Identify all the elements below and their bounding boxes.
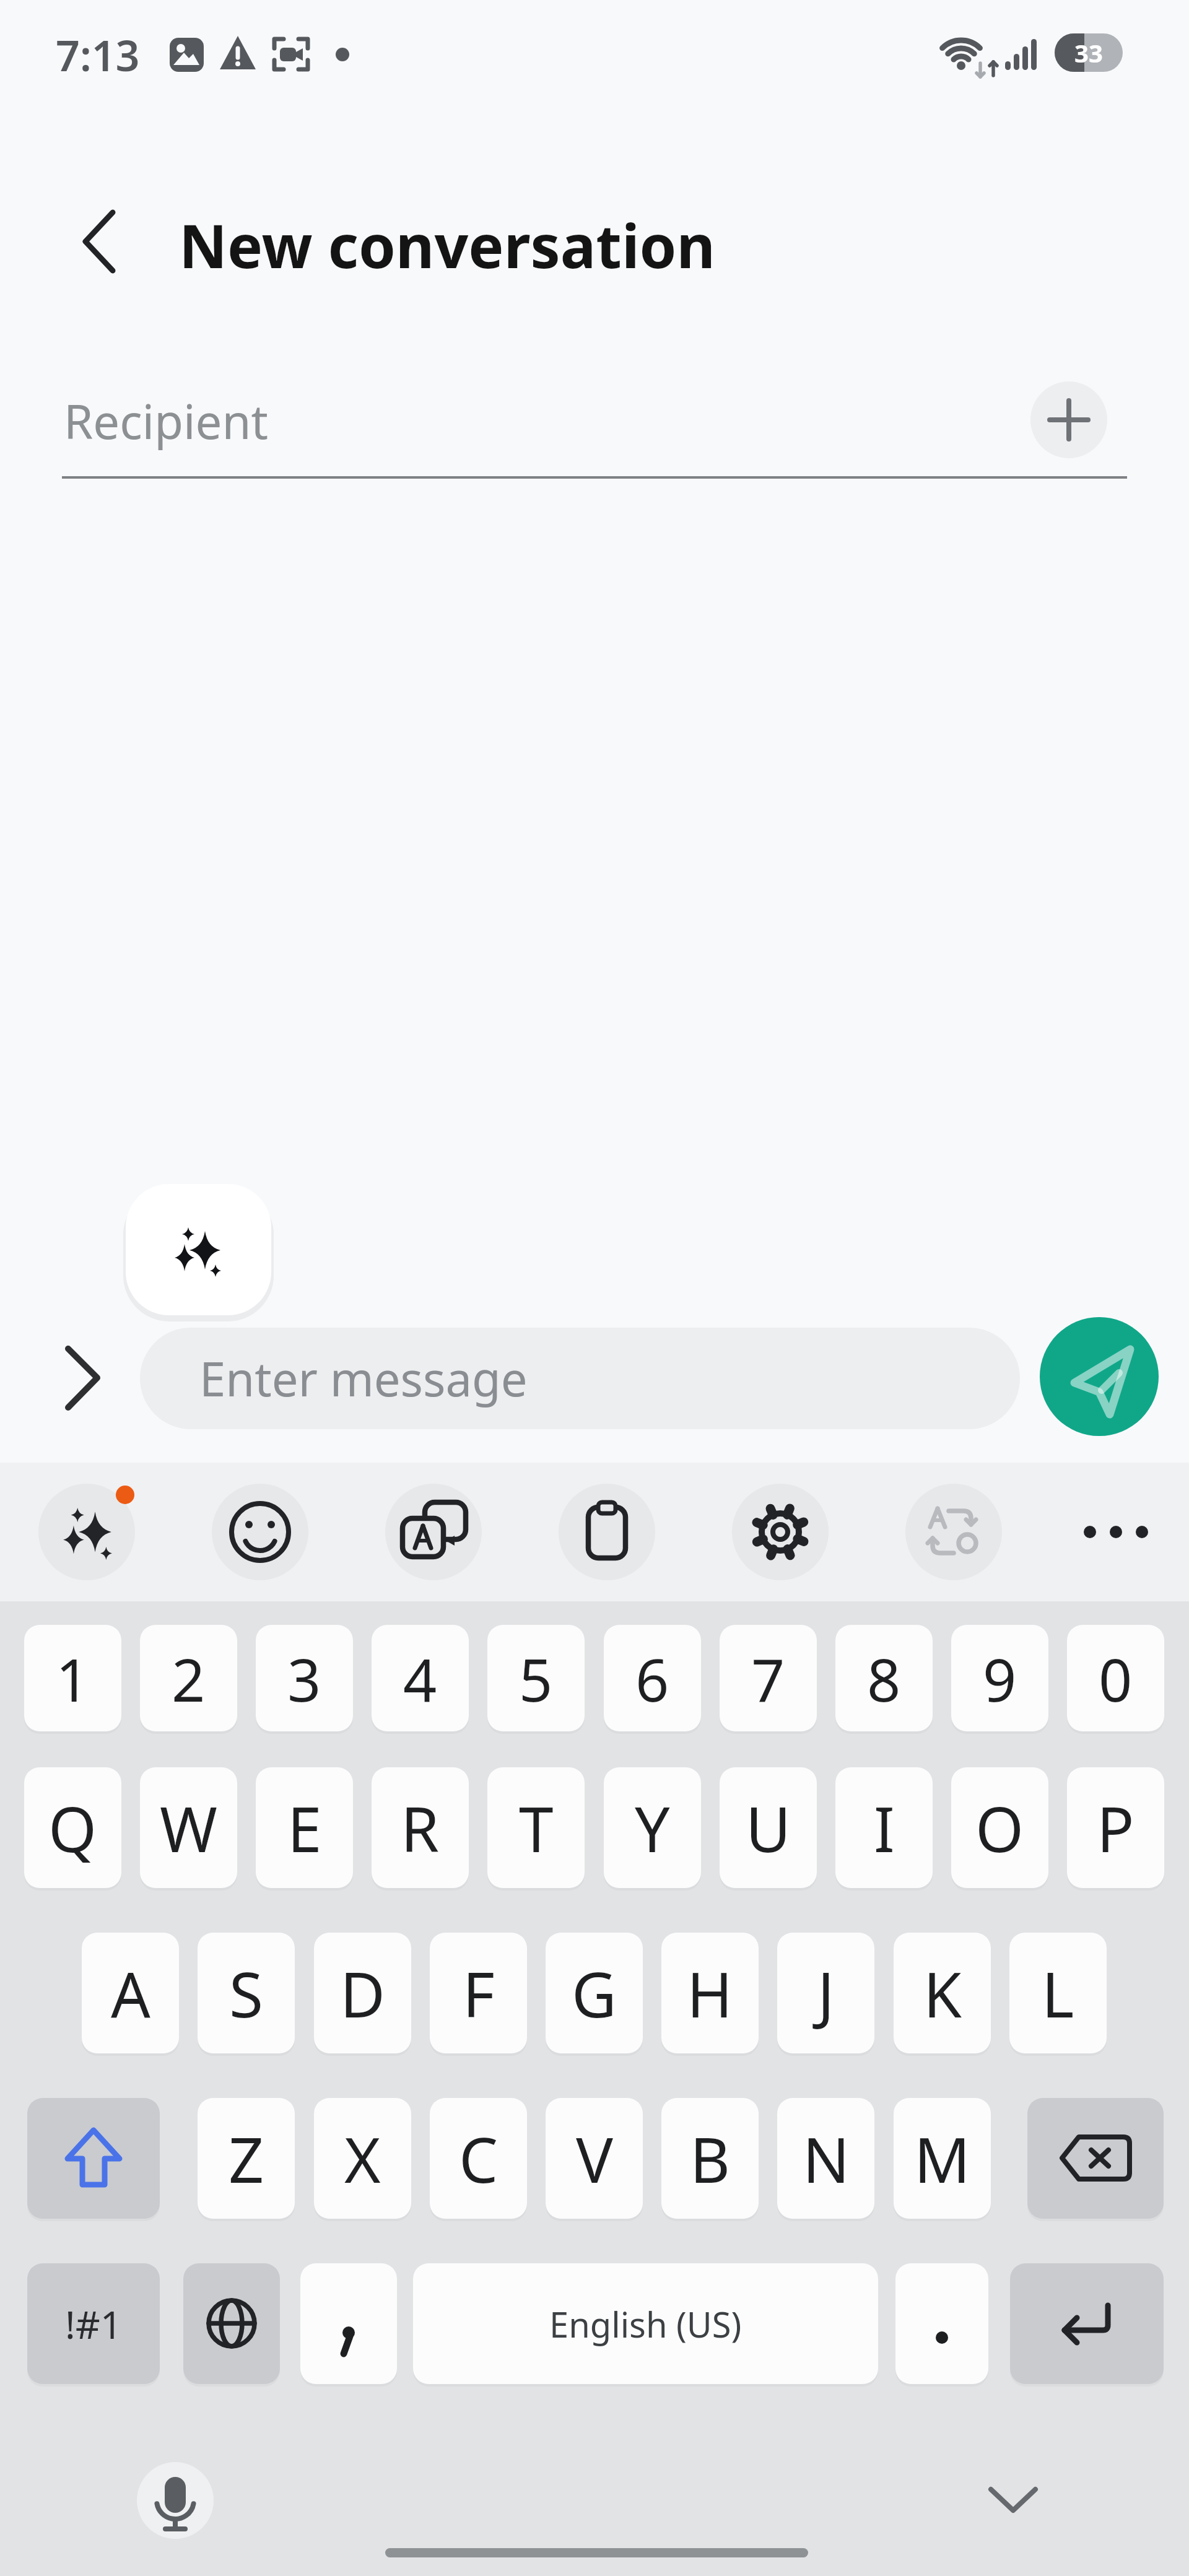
button[interactable]: English (US) — [413, 2263, 878, 2384]
staticText: M — [914, 2117, 970, 2201]
button[interactable]: H — [661, 1933, 759, 2053]
button[interactable]: W — [140, 1767, 237, 1888]
staticText: B — [690, 2117, 730, 2201]
button[interactable]: 1 — [24, 1625, 121, 1731]
button[interactable]: 4 — [372, 1625, 469, 1731]
staticText: 6 — [635, 1638, 669, 1718]
staticText: K — [923, 1951, 962, 2035]
button[interactable]: P — [1067, 1767, 1164, 1888]
button[interactable]: 9 — [951, 1625, 1048, 1731]
staticText: Q — [48, 1786, 97, 1870]
button[interactable] — [385, 1484, 482, 1580]
staticText: R — [401, 1786, 440, 1870]
button[interactable] — [68, 204, 136, 279]
button[interactable]: !#1 — [27, 2263, 160, 2384]
staticText: 8 — [867, 1638, 901, 1718]
staticText: 33 — [1074, 36, 1103, 69]
button[interactable]: 6 — [604, 1625, 701, 1731]
staticText: 0 — [1099, 1638, 1133, 1718]
staticText: Recipient — [64, 389, 268, 453]
button[interactable] — [732, 1484, 829, 1580]
button[interactable] — [905, 1484, 1002, 1580]
button[interactable]: O — [951, 1767, 1048, 1888]
button[interactable]: Y — [604, 1767, 701, 1888]
staticText: U — [746, 1786, 791, 1870]
button[interactable]: 8 — [835, 1625, 933, 1731]
staticText: F — [463, 1951, 495, 2035]
button[interactable]: F — [430, 1933, 527, 2053]
staticText: Y — [635, 1786, 670, 1870]
button[interactable]: C — [430, 2098, 527, 2219]
staticText: X — [344, 2117, 381, 2201]
button[interactable] — [126, 1184, 271, 1315]
button[interactable] — [1030, 381, 1107, 458]
button[interactable]: 3 — [256, 1625, 353, 1731]
button[interactable]: B — [661, 2098, 759, 2219]
button[interactable]: Z — [198, 2098, 295, 2219]
staticText: !#1 — [65, 2298, 123, 2350]
staticText: 7 — [751, 1638, 785, 1718]
staticText: O — [975, 1786, 1024, 1870]
staticText: H — [687, 1951, 733, 2035]
staticText: Z — [229, 2117, 264, 2201]
staticText: 1 — [56, 1638, 90, 1718]
button[interactable]: E — [256, 1767, 353, 1888]
button[interactable]: 0 — [1067, 1625, 1164, 1731]
staticText: 5 — [519, 1638, 553, 1718]
staticText: I — [874, 1786, 895, 1870]
button[interactable] — [895, 2263, 988, 2384]
staticText: 3 — [287, 1638, 321, 1718]
staticText: W — [160, 1786, 217, 1870]
button[interactable]: L — [1009, 1933, 1107, 2053]
button[interactable] — [976, 2463, 1050, 2538]
button[interactable]: R — [372, 1767, 469, 1888]
button[interactable]: A — [82, 1933, 179, 2053]
button[interactable] — [120, 2445, 231, 2556]
staticText: L — [1042, 1951, 1074, 2035]
staticText: T — [519, 1786, 554, 1870]
button[interactable]: G — [546, 1933, 643, 2053]
button[interactable] — [1027, 2098, 1164, 2219]
button[interactable]: S — [198, 1933, 295, 2053]
staticText: 9 — [983, 1638, 1017, 1718]
button[interactable] — [1068, 1484, 1164, 1580]
button[interactable] — [212, 1484, 308, 1580]
button[interactable] — [38, 1484, 135, 1580]
button[interactable] — [300, 2263, 397, 2384]
button[interactable]: D — [314, 1933, 411, 2053]
staticText: A — [111, 1951, 150, 2035]
staticText: English (US) — [549, 2300, 742, 2348]
button[interactable]: T — [487, 1767, 585, 1888]
staticText: 7:13 — [56, 26, 140, 84]
button[interactable]: U — [720, 1767, 817, 1888]
button[interactable]: J — [777, 1933, 874, 2053]
button[interactable] — [559, 1484, 655, 1580]
staticText: Enter message — [199, 1346, 528, 1411]
button[interactable]: K — [894, 1933, 991, 2053]
staticText: V — [576, 2117, 613, 2201]
staticText: New conversation — [179, 204, 716, 279]
button[interactable]: 2 — [140, 1625, 237, 1731]
button[interactable] — [1040, 1317, 1159, 1436]
staticText: E — [287, 1786, 322, 1870]
staticText: S — [229, 1951, 263, 2035]
button[interactable]: 7 — [720, 1625, 817, 1731]
staticText: 4 — [403, 1638, 437, 1718]
button[interactable] — [183, 2263, 280, 2384]
button[interactable] — [1010, 2263, 1164, 2384]
button[interactable]: N — [777, 2098, 874, 2219]
button[interactable]: Enter message — [140, 1328, 1020, 1429]
staticText: 2 — [172, 1638, 206, 1718]
button[interactable]: 5 — [487, 1625, 585, 1731]
staticText: G — [572, 1951, 617, 2035]
button[interactable]: I — [835, 1767, 933, 1888]
staticText: P — [1097, 1786, 1135, 1870]
button[interactable]: V — [546, 2098, 643, 2219]
button[interactable]: X — [314, 2098, 411, 2219]
staticText: D — [340, 1951, 385, 2035]
button[interactable]: M — [894, 2098, 991, 2219]
staticText: C — [459, 2117, 499, 2201]
button[interactable] — [27, 2098, 160, 2219]
button[interactable]: Q — [24, 1767, 121, 1888]
staticText: J — [817, 1951, 835, 2035]
